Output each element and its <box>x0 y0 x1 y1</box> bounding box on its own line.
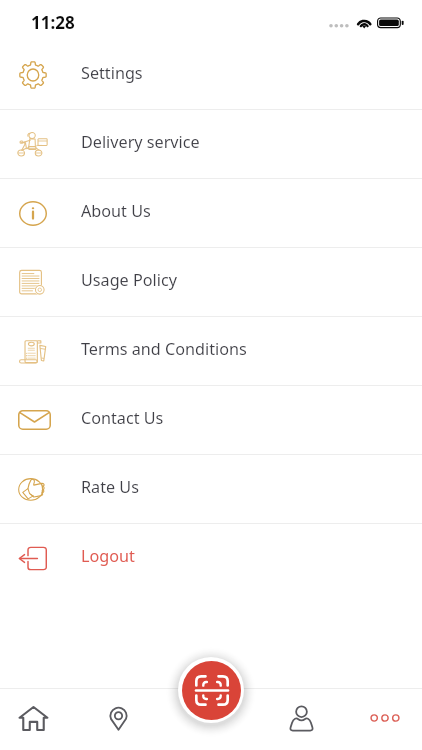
staticText: Terms and Conditions <box>81 338 247 360</box>
button[interactable]: Scan QR code <box>182 661 241 720</box>
button[interactable]: More <box>354 688 416 750</box>
button[interactable]: About Us <box>0 179 422 247</box>
staticText: Usage Policy <box>81 269 177 291</box>
staticText: Contact Us <box>81 407 164 429</box>
button[interactable]: Locations <box>87 688 149 750</box>
staticText: About Us <box>81 200 151 222</box>
button[interactable]: Profile <box>270 688 332 750</box>
staticText: Delivery service <box>81 131 200 153</box>
button[interactable]: Contact Us <box>0 386 422 454</box>
button[interactable]: Settings <box>0 41 422 109</box>
staticText: Rate Us <box>81 476 139 498</box>
button[interactable]: Logout <box>0 524 422 592</box>
button[interactable]: Delivery service <box>0 110 422 178</box>
button[interactable]: Terms and Conditions <box>0 317 422 385</box>
button[interactable]: Rate Us <box>0 455 422 523</box>
staticText: 11:28 <box>31 11 75 34</box>
button[interactable]: Usage Policy <box>0 248 422 316</box>
staticText: Settings <box>81 62 143 84</box>
staticText: Logout <box>81 545 135 567</box>
button[interactable]: Home <box>2 688 64 750</box>
